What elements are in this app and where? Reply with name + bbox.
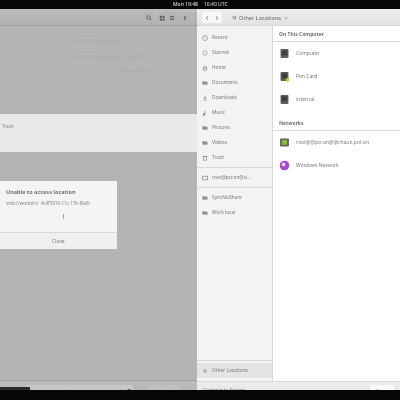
staticText: On This Computer [279,31,324,38]
staticText: internal [296,96,315,103]
staticText: Downloads [212,94,238,101]
button[interactable]: root@pcr.on@ci… [197,170,272,185]
staticText: SyncNoShare [212,194,242,201]
button[interactable]: Windows Network [273,154,400,177]
button[interactable]: Close [0,233,117,249]
staticText: Connect to Server [203,387,245,394]
staticText: Windows Network [296,162,339,169]
button[interactable]: Music [197,105,272,120]
button[interactable]: Sort [180,12,190,23]
button[interactable]: Back [202,12,212,23]
button[interactable]: Trash [197,150,272,165]
button[interactable]: Conn [370,385,394,396]
other: Help [127,389,131,393]
staticText: Unable to access location [6,188,76,195]
button[interactable]: Videos [197,135,272,150]
staticText: Pen Card [296,73,318,80]
button[interactable]: Computer [273,42,400,65]
staticText: 16:40 UTC [204,1,228,8]
button[interactable]: Enter server address… [26,385,133,396]
staticText: Connect [155,388,173,394]
button[interactable]: Work local [197,205,272,220]
staticText: smb://workstn/ 4c4f5919-11c-17b-f9a8- [6,200,91,206]
staticText: Videos [212,139,227,146]
button[interactable]: SyncNoShare [197,190,272,205]
staticText: Recent [212,34,228,41]
staticText: Computer [296,50,320,57]
staticText: Enter server address… [30,388,78,394]
staticText: 1.6 TB / 1.0 TB available [70,38,120,44]
staticText: root@@pcr.on@@chauti.pol.sin [296,139,370,146]
button[interactable]: Downloads [197,90,272,105]
button[interactable]: Menu [193,12,203,23]
button[interactable]: List view [167,12,177,23]
button[interactable]: Grid view [157,12,167,23]
button[interactable]: Home [197,60,272,75]
staticText: Trash [2,123,14,129]
staticText: Pictures [212,124,231,131]
staticText: Other Locations [239,14,281,21]
staticText: Home [212,64,226,71]
staticText: Mon 19:48 [173,1,198,8]
button[interactable]: Search [144,12,154,23]
button[interactable]: Recent servers [136,385,143,396]
staticText: Trash [212,154,225,161]
button[interactable]: Other Locations [229,12,291,23]
staticText: Conn [376,388,388,394]
button[interactable]: Connect [147,385,181,396]
button[interactable]: Other Locations [197,363,272,378]
staticText: Documents [212,79,238,86]
button[interactable]: Documents [197,75,272,90]
button[interactable]: internal [273,88,400,111]
staticText: Music [212,109,226,116]
button[interactable]: Starred [197,45,272,60]
staticText: root@pcr.on@ci… [212,174,251,181]
staticText: Other Locations [212,367,248,374]
button[interactable]: Recent [197,30,272,45]
button[interactable]: Forward [212,12,222,23]
staticText: Networks [279,120,304,127]
button[interactable]: root@@pcr.on@@chauti.pol.sin [273,131,400,154]
staticText: Starred [212,49,229,56]
staticText: 1.5 TB / 1.0 TB available [70,54,120,60]
staticText: Work local [212,209,236,216]
button[interactable]: Pictures [197,120,272,135]
staticText: Close [52,238,65,245]
button[interactable]: Pen Card [273,65,400,88]
